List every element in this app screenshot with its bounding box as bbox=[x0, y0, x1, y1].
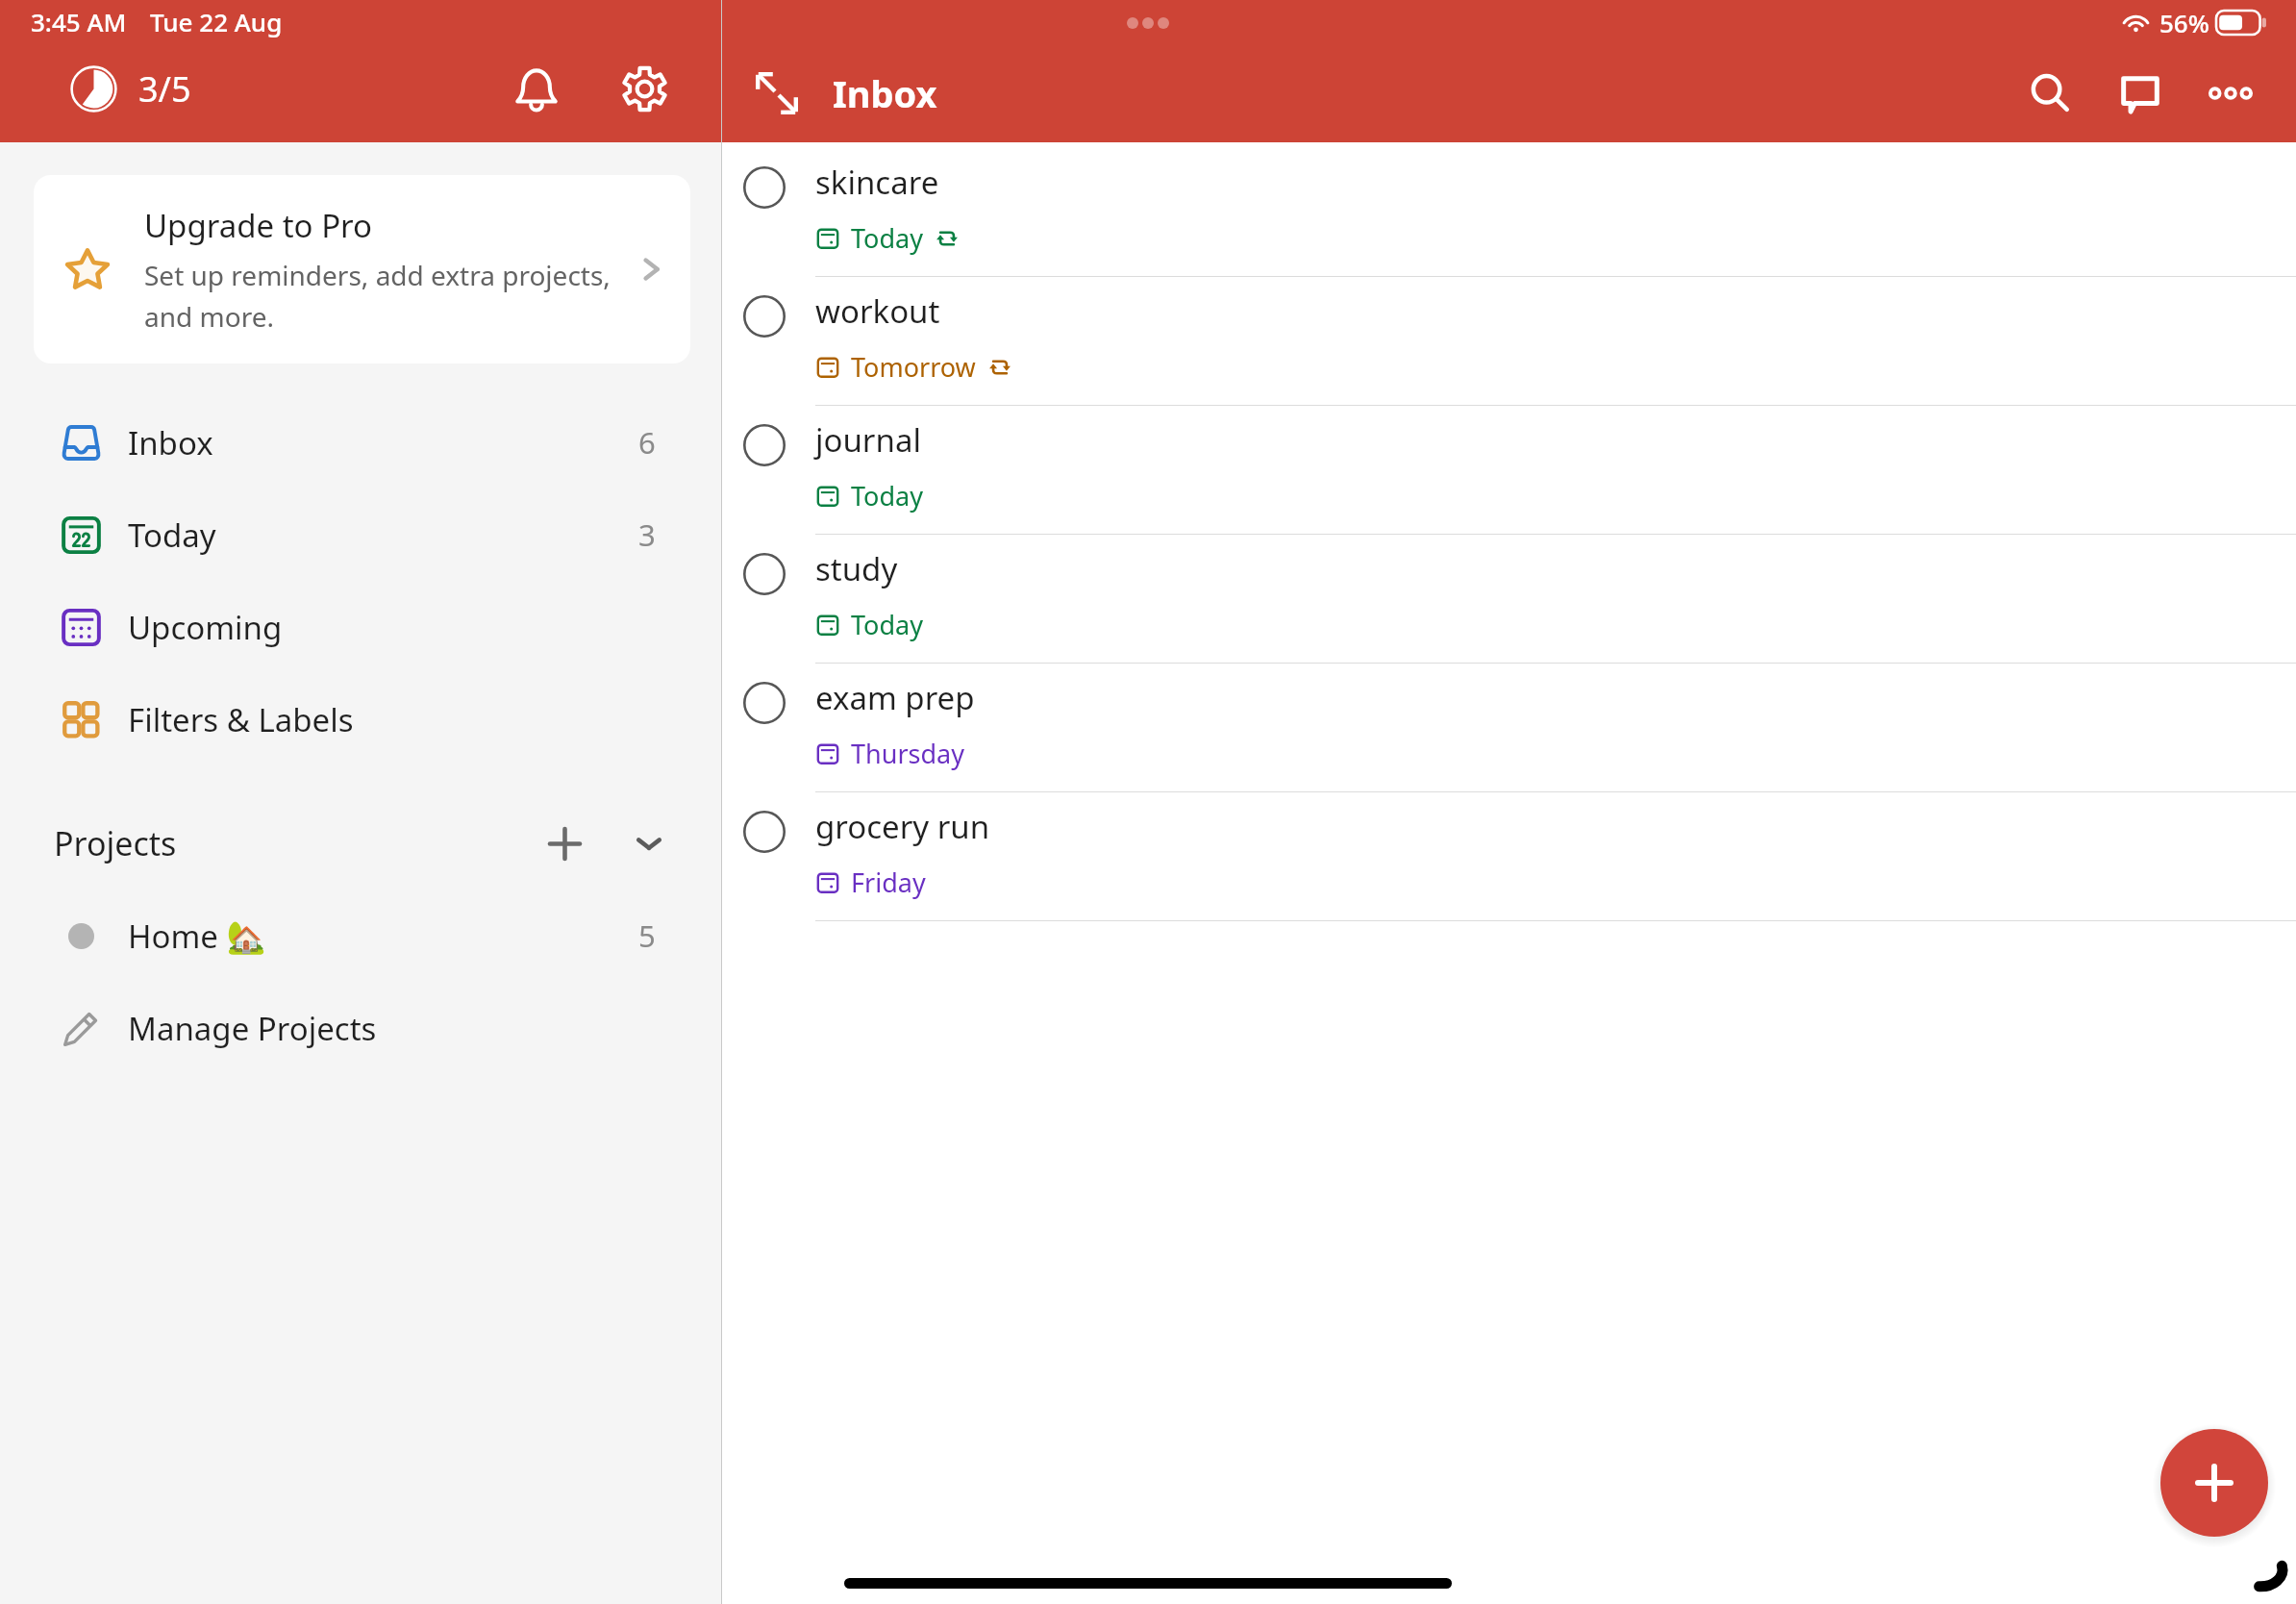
staticText: 3 bbox=[638, 514, 656, 555]
staticText: Today bbox=[851, 607, 923, 642]
staticText: Upgrade to Pro bbox=[144, 204, 373, 247]
button[interactable]: Upcoming bbox=[0, 581, 721, 673]
staticText: Upcoming bbox=[128, 606, 283, 649]
staticText: 6 bbox=[638, 422, 656, 463]
staticText: Filters & Labels bbox=[128, 698, 354, 741]
button[interactable]: Add task bbox=[2160, 1429, 2268, 1537]
button[interactable]: Filters & Labels bbox=[0, 673, 721, 765]
button[interactable]: Search bbox=[2016, 60, 2084, 127]
button[interactable]: Complete grocery run bbox=[731, 798, 798, 865]
staticText: 56% bbox=[2159, 6, 2209, 39]
staticText: 5 bbox=[638, 915, 656, 956]
staticText: study bbox=[815, 547, 898, 590]
button[interactable]: Complete exam prep bbox=[722, 664, 2296, 792]
button[interactable]: Notifications bbox=[504, 56, 569, 121]
staticText: Projects bbox=[54, 821, 177, 865]
staticText: skincare bbox=[815, 161, 939, 204]
staticText: Inbox bbox=[833, 68, 937, 118]
staticText: Today bbox=[851, 220, 923, 256]
staticText: Home 🏡 bbox=[128, 915, 266, 958]
staticText: Today bbox=[128, 514, 216, 557]
button[interactable]: Add project bbox=[533, 812, 596, 875]
staticText: Set up reminders, add extra projects, an… bbox=[144, 257, 623, 335]
button[interactable]: Complete study bbox=[722, 535, 2296, 664]
button[interactable]: Collapse projects bbox=[617, 812, 681, 875]
staticText: exam prep bbox=[815, 676, 975, 719]
staticText: Inbox bbox=[128, 421, 213, 464]
staticText: journal bbox=[815, 418, 921, 462]
button[interactable]: Comments bbox=[2107, 60, 2174, 127]
button[interactable]: Complete journal bbox=[731, 412, 798, 479]
staticText: 3:45 AM bbox=[31, 5, 127, 38]
staticText: Tue 22 Aug bbox=[150, 5, 283, 38]
button[interactable]: Complete study bbox=[731, 540, 798, 608]
button[interactable]: Complete workout bbox=[731, 283, 798, 350]
staticText: 3/5 bbox=[138, 65, 191, 113]
button[interactable]: Today bbox=[0, 489, 721, 581]
staticText: Manage Projects bbox=[128, 1007, 377, 1050]
button[interactable]: Complete skincare bbox=[731, 154, 798, 221]
staticText: Thursday bbox=[851, 736, 964, 771]
staticText: Tomorrow bbox=[851, 349, 976, 385]
button[interactable]: Daily goal 3 of 5 bbox=[69, 64, 117, 113]
button[interactable]: Complete skincare bbox=[722, 148, 2296, 277]
staticText: Friday bbox=[851, 865, 926, 900]
button[interactable]: More options bbox=[2197, 60, 2264, 127]
button[interactable]: Complete journal bbox=[722, 406, 2296, 535]
button[interactable]: Inbox bbox=[0, 396, 721, 489]
button[interactable]: Manage Projects bbox=[0, 982, 721, 1074]
button[interactable]: Expand pane bbox=[746, 63, 808, 124]
staticText: Today bbox=[851, 478, 923, 514]
staticText: grocery run bbox=[815, 805, 990, 848]
button[interactable]: Complete workout bbox=[722, 277, 2296, 406]
button[interactable]: Home 🏡 bbox=[0, 890, 721, 982]
button[interactable]: Complete grocery run bbox=[722, 792, 2296, 921]
button[interactable]: Complete exam prep bbox=[731, 669, 798, 737]
button[interactable]: Settings bbox=[611, 56, 677, 121]
staticText: workout bbox=[815, 289, 940, 333]
button[interactable]: Upgrade to Pro bbox=[34, 175, 690, 363]
